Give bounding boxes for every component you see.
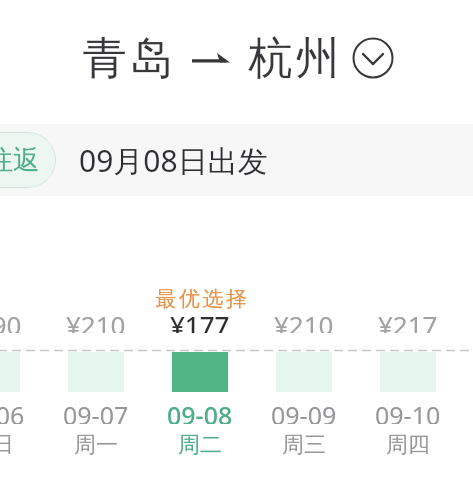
staticText: 青岛 bbox=[81, 31, 175, 86]
staticText: 09-09 bbox=[271, 398, 337, 424]
button[interactable]: 09月08日出发 bbox=[79, 124, 268, 196]
button[interactable]: ¥217 bbox=[356, 278, 460, 468]
staticText: ¥217 bbox=[378, 307, 438, 333]
staticText: 往返 bbox=[0, 143, 40, 177]
staticText: 周一 bbox=[74, 431, 118, 457]
staticText: ¥210 bbox=[274, 307, 334, 333]
staticText: 周二 bbox=[178, 431, 222, 457]
staticText: 周四 bbox=[386, 431, 430, 457]
staticText: 09-08 bbox=[167, 398, 233, 424]
staticText: 09-10 bbox=[375, 398, 441, 424]
button[interactable]: ¥210 bbox=[44, 278, 148, 468]
staticText: 周三 bbox=[282, 431, 326, 457]
staticText: ¥190 bbox=[0, 307, 22, 333]
button[interactable]: 最优选择 bbox=[148, 278, 252, 468]
staticText: 周日 bbox=[0, 431, 14, 457]
staticText: 09月08日出发 bbox=[79, 140, 268, 181]
button[interactable]: 往返 bbox=[0, 132, 56, 188]
staticText: 09-06 bbox=[0, 398, 25, 424]
staticText: ¥177 bbox=[170, 307, 230, 333]
staticText: 最优选择 bbox=[155, 286, 250, 312]
staticText: 杭州 bbox=[247, 31, 341, 86]
button[interactable]: Change trip, expand bbox=[351, 36, 395, 80]
button[interactable]: ¥190 bbox=[0, 278, 44, 468]
staticText: ¥210 bbox=[66, 307, 126, 333]
button[interactable]: ¥210 bbox=[252, 278, 356, 468]
staticText: 09-07 bbox=[63, 398, 129, 424]
